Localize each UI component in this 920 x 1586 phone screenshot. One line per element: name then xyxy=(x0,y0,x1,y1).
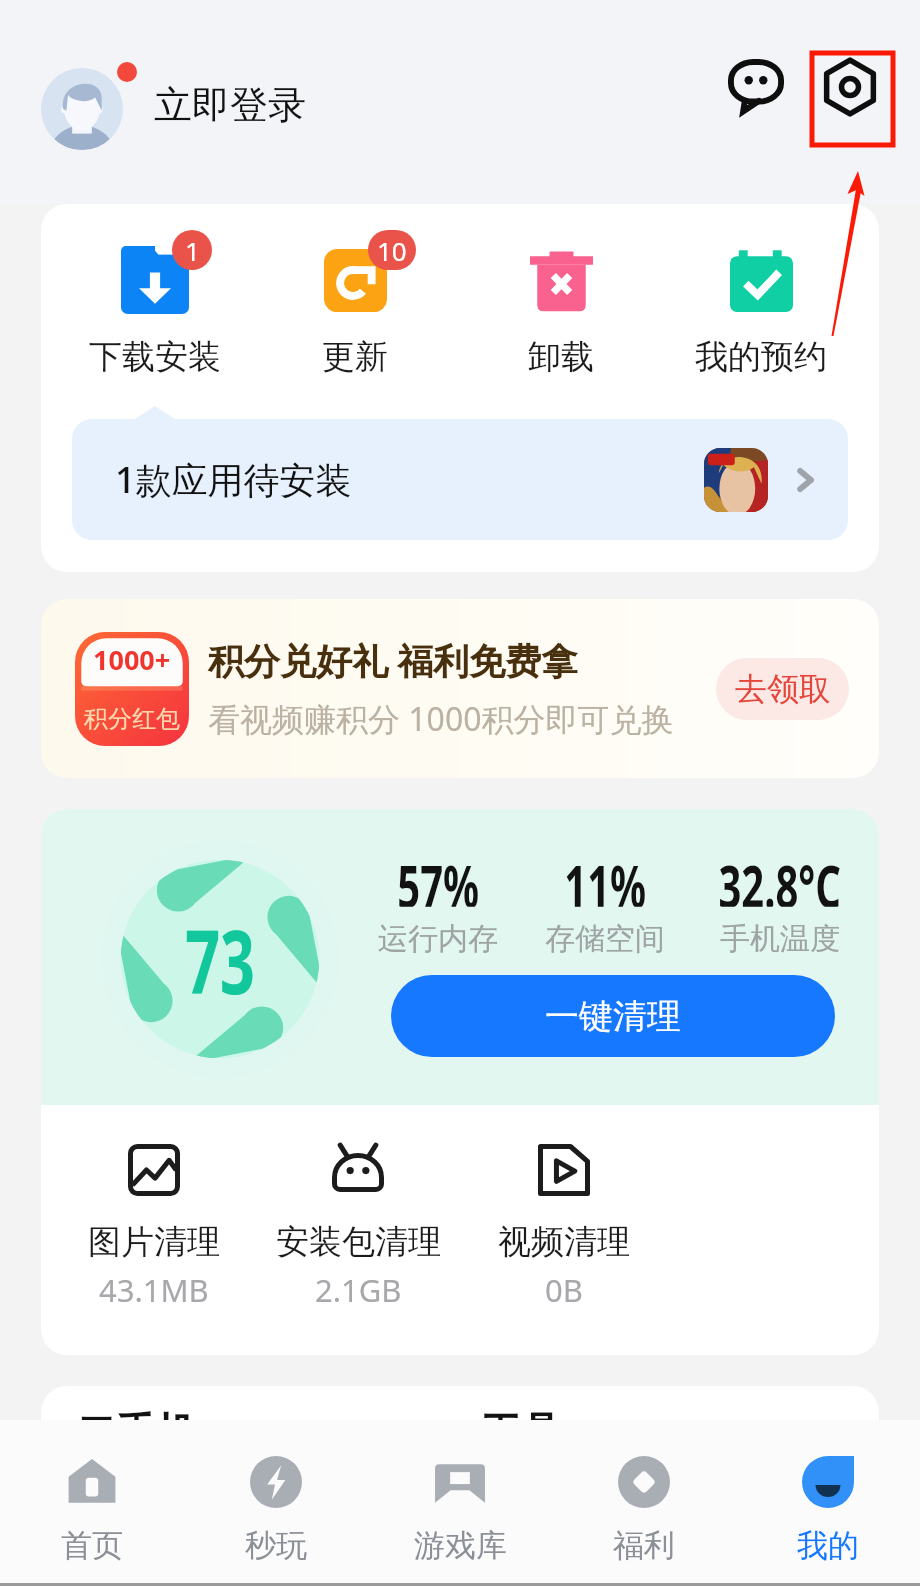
staticText: 二手机 xyxy=(76,1407,196,1457)
staticText: 视频清理 xyxy=(498,1221,630,1263)
staticText: 一键清理 xyxy=(545,995,681,1038)
staticText: 我的 xyxy=(797,1526,859,1565)
staticText: 手机温度 xyxy=(720,920,840,958)
button[interactable]: 一键清理 xyxy=(391,975,835,1057)
staticText: 图片清理 xyxy=(88,1221,220,1263)
button[interactable]: Messages xyxy=(716,47,796,127)
staticText: 安装包清理 xyxy=(276,1221,441,1263)
staticText: 我的预约 xyxy=(695,336,827,373)
staticText: 福利 xyxy=(613,1526,675,1565)
staticText: 57% xyxy=(397,845,480,907)
staticText: 更新 xyxy=(322,336,388,373)
button[interactable]: 福利 xyxy=(552,1455,736,1565)
staticText: 10 xyxy=(377,233,407,268)
button[interactable]: 1款应用待安装 xyxy=(72,419,848,540)
button[interactable]: 1 xyxy=(55,246,255,373)
staticText: 0B xyxy=(545,1269,583,1311)
button[interactable]: 图片清理 xyxy=(54,1143,254,1311)
staticText: 工具 xyxy=(481,1407,561,1457)
staticText: 1 xyxy=(185,233,200,268)
staticText: 43.1MB xyxy=(99,1269,209,1311)
button[interactable]: 游戏库 xyxy=(368,1455,552,1565)
staticText: 存储空间 xyxy=(545,920,665,958)
button[interactable]: Settings xyxy=(810,47,890,127)
button[interactable]: 去领取 xyxy=(716,658,849,720)
staticText: 卸载 xyxy=(528,336,594,373)
staticText: 去领取 xyxy=(735,669,831,709)
staticText: 积分红包 xyxy=(84,704,180,734)
button[interactable]: 10 xyxy=(255,246,455,373)
staticText: 下载安装 xyxy=(89,336,221,373)
button[interactable]: 安装包清理 xyxy=(258,1143,458,1311)
staticText: 游戏库 xyxy=(414,1526,507,1565)
staticText: 首页 xyxy=(61,1526,123,1565)
button[interactable]: 1000+ xyxy=(41,599,879,778)
staticText: 看视频赚积分 1000积分即可兑换 xyxy=(208,697,674,741)
staticText: 积分兑好礼 福利免费拿 xyxy=(208,636,578,685)
button[interactable]: 视频清理 xyxy=(464,1143,664,1311)
staticText: 73 xyxy=(185,900,256,1019)
staticText: 11% xyxy=(564,845,647,907)
button[interactable]: 卸载 xyxy=(461,246,661,373)
button[interactable]: 我的 xyxy=(736,1455,920,1565)
button[interactable]: 首页 xyxy=(0,1455,184,1565)
staticText: 1000+ xyxy=(93,641,171,678)
staticText: 运行内存 xyxy=(378,920,498,958)
button[interactable]: 秒玩 xyxy=(184,1455,368,1565)
button[interactable]: 我的预约 xyxy=(661,246,861,373)
button[interactable]: Profile xyxy=(41,54,137,150)
staticText: 2.1GB xyxy=(315,1269,402,1311)
staticText: 32.8°C xyxy=(718,845,842,907)
staticText: 秒玩 xyxy=(245,1526,307,1565)
staticText: 1款应用待安装 xyxy=(115,455,352,504)
staticText: 立即登录 xyxy=(154,81,306,129)
